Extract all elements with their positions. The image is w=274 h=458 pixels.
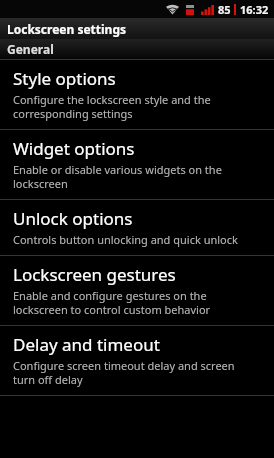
staticText: General	[7, 41, 54, 57]
button[interactable]: Widget options	[0, 130, 274, 199]
staticText: Delay and timeout	[13, 333, 160, 356]
staticText: Configure the lockscreen style and the c…	[13, 92, 211, 121]
staticText: 16:32	[240, 2, 269, 17]
button[interactable]: Lockscreen settings	[0, 18, 274, 39]
button[interactable]: Unlock options	[0, 200, 274, 255]
staticText: Enable and configure gestures on the loc…	[13, 288, 211, 317]
staticText: Enable or disable various widgets on the…	[13, 162, 222, 191]
button[interactable]: Lockscreen gestures	[0, 256, 274, 325]
staticText: Unlock options	[13, 207, 133, 230]
button[interactable]: Style options	[0, 60, 274, 129]
staticText: Configure screen timeout delay and scree…	[13, 358, 235, 387]
staticText: Widget options	[13, 137, 135, 160]
staticText: Controls button unlocking and quick unlo…	[13, 232, 238, 247]
staticText: 85	[218, 2, 231, 17]
staticText: Style options	[13, 67, 116, 90]
staticText: Lockscreen settings	[7, 21, 127, 37]
button[interactable]: Delay and timeout	[0, 326, 274, 395]
staticText: Lockscreen gestures	[13, 263, 176, 286]
